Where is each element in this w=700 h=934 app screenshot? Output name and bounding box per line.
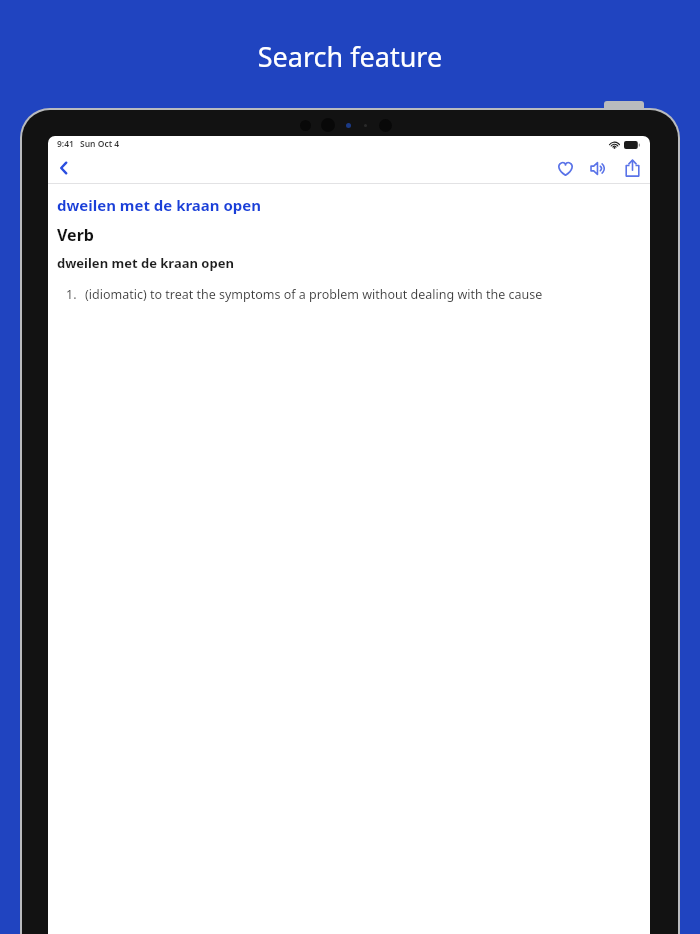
button[interactable]: dweilen met de kraan open bbox=[57, 195, 638, 215]
button[interactable]: Favourite bbox=[553, 156, 577, 180]
staticText: Verb bbox=[57, 224, 94, 246]
button[interactable]: Pronounce bbox=[586, 156, 610, 180]
button[interactable]: Share bbox=[620, 156, 644, 180]
staticText: Search feature bbox=[0, 38, 700, 75]
staticText: (idiomatic) to treat the symptoms of a p… bbox=[85, 286, 543, 303]
staticText: 9:41 bbox=[57, 138, 74, 150]
button[interactable]: Back bbox=[51, 155, 77, 181]
staticText: dweilen met de kraan open bbox=[57, 254, 234, 272]
staticText: dweilen met de kraan open bbox=[57, 195, 262, 215]
staticText: 1. bbox=[66, 286, 77, 303]
staticText: Sun Oct 4 bbox=[80, 138, 120, 150]
